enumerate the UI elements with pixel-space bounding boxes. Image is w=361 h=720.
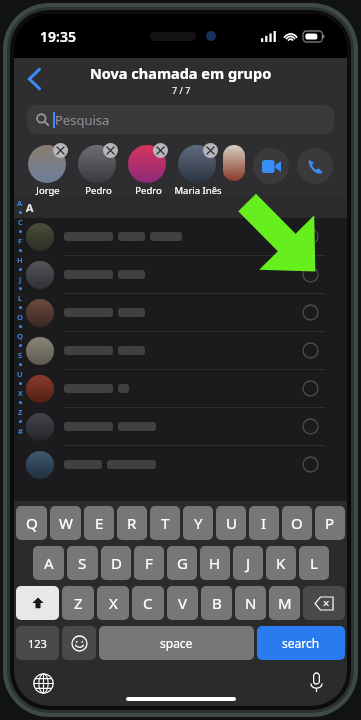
staticText: J [19, 274, 22, 284]
button[interactable]: S [67, 546, 98, 580]
staticText: B [212, 593, 222, 613]
staticText: O [17, 312, 23, 322]
staticText: 123 [28, 636, 47, 651]
button[interactable]: M [269, 586, 300, 620]
button[interactable]: Video call [253, 148, 289, 184]
button[interactable]: N [235, 586, 266, 620]
button[interactable]: Pesquisa [27, 105, 334, 134]
staticText: Pesquisa [55, 111, 110, 129]
staticText: 7 / 7 [172, 84, 191, 96]
button[interactable]: E [84, 506, 114, 540]
staticText: A [44, 553, 54, 573]
staticText: 19:35 [40, 27, 76, 46]
button[interactable] [14, 408, 347, 445]
button[interactable]: G [167, 546, 197, 580]
staticText: Q [17, 331, 23, 341]
staticText: J [246, 553, 251, 573]
staticText: S [78, 553, 87, 573]
staticText: F [145, 553, 153, 573]
staticText: U [17, 369, 23, 379]
staticText: Z [18, 407, 23, 417]
button[interactable]: U [216, 506, 246, 540]
staticText: T [161, 513, 170, 533]
staticText: # [18, 426, 23, 436]
button[interactable]: R [117, 506, 147, 540]
button[interactable]: X [97, 586, 129, 620]
staticText: V [178, 593, 188, 613]
button[interactable]: Q [16, 506, 47, 540]
staticText: C [18, 217, 23, 227]
button[interactable]: Audio call [297, 148, 333, 184]
button[interactable]: space [99, 626, 254, 660]
button[interactable]: T [150, 506, 180, 540]
staticText: G [177, 553, 188, 573]
staticText: H [17, 255, 23, 265]
staticText: R [127, 513, 137, 533]
button[interactable] [14, 256, 347, 293]
staticText: A [26, 200, 34, 215]
button[interactable] [14, 446, 347, 483]
button[interactable]: C [132, 586, 164, 620]
staticText: L [310, 553, 318, 573]
staticText: I [261, 513, 267, 533]
button[interactable]: O [282, 506, 312, 540]
button[interactable]: A [33, 546, 64, 580]
button[interactable]: I [249, 506, 279, 540]
staticText: E [95, 513, 104, 533]
staticText: Pedro [135, 184, 162, 197]
button[interactable]: Back [14, 59, 54, 99]
button[interactable]: Shift [16, 586, 59, 620]
button[interactable]: Y [183, 506, 213, 540]
button[interactable]: search [257, 626, 345, 660]
button[interactable]: Pedro [73, 139, 123, 197]
button[interactable]: Z [62, 586, 94, 620]
button[interactable]: W [50, 506, 81, 540]
staticText: Pedro [85, 184, 112, 197]
staticText: L [18, 293, 23, 303]
button[interactable]: H [200, 546, 230, 580]
button[interactable]: K [266, 546, 296, 580]
button[interactable] [14, 370, 347, 407]
staticText: Jorge [36, 184, 60, 197]
button[interactable]: Backspace [303, 586, 345, 620]
staticText: P [325, 513, 335, 533]
staticText: Z [74, 593, 83, 613]
staticText: M [278, 593, 292, 613]
staticText: K [276, 553, 286, 573]
staticText: C [143, 593, 153, 613]
button[interactable]: P [315, 506, 345, 540]
button[interactable]: V [167, 586, 198, 620]
button[interactable]: 123 [16, 626, 59, 660]
button[interactable] [14, 294, 347, 331]
button[interactable]: F [134, 546, 164, 580]
button[interactable]: D [101, 546, 131, 580]
button[interactable]: L [299, 546, 329, 580]
staticText: Nova chamada em grupo [90, 63, 272, 83]
button[interactable]: J [233, 546, 263, 580]
staticText: N [245, 593, 257, 613]
button[interactable]: Emoji [62, 626, 96, 660]
button[interactable]: Change keyboard language [28, 668, 58, 698]
button[interactable]: Jorge [23, 139, 73, 197]
staticText: A [17, 198, 23, 208]
staticText: O [291, 513, 303, 533]
button[interactable] [14, 218, 347, 255]
staticText: Y [194, 513, 203, 533]
staticText: search [282, 635, 320, 651]
staticText: W [59, 513, 73, 533]
staticText: Maria Inês [174, 184, 222, 197]
staticText: space [160, 635, 193, 651]
staticText: X [18, 388, 23, 398]
staticText: S [18, 350, 23, 360]
staticText: X [109, 593, 118, 613]
button[interactable]: Dictation [301, 668, 331, 698]
button[interactable]: Maria Inês [173, 139, 223, 197]
button[interactable]: Pedro [123, 139, 173, 197]
button[interactable]: B [201, 586, 232, 620]
staticText: Q [26, 513, 38, 533]
button[interactable] [14, 332, 347, 369]
staticText: D [111, 553, 122, 573]
staticText: U [226, 513, 237, 533]
staticText: F [18, 236, 23, 246]
staticText: H [209, 553, 221, 573]
